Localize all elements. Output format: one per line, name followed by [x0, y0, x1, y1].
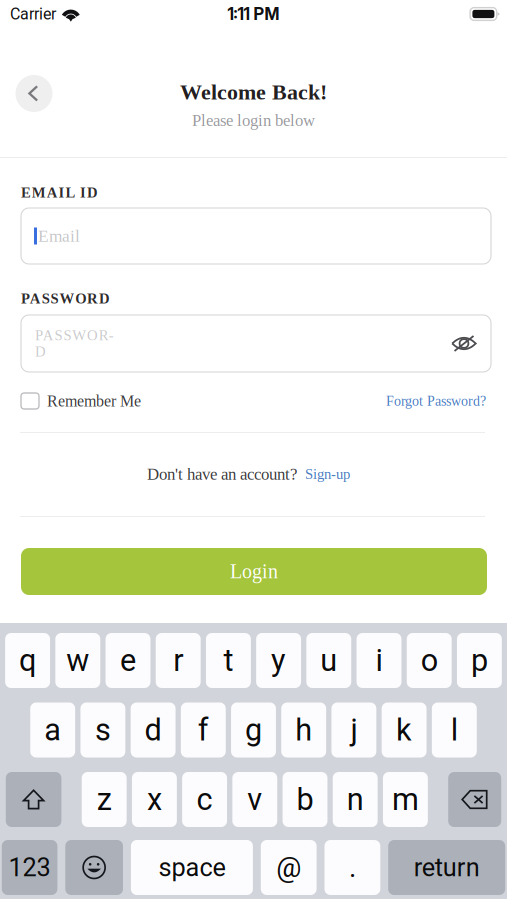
staticText: 123 [9, 853, 51, 882]
staticText: c [197, 781, 213, 817]
button[interactable]: Login [21, 548, 487, 595]
staticText: Forgot Password? [386, 393, 486, 409]
staticText: e [120, 642, 136, 678]
button[interactable]: l [432, 702, 477, 757]
staticText: i [375, 642, 382, 678]
staticText: k [396, 712, 412, 748]
button[interactable]: h [281, 702, 326, 757]
button[interactable]: Emoji [65, 840, 123, 895]
button[interactable]: z [82, 772, 127, 827]
button[interactable]: v [232, 772, 277, 827]
button[interactable]: p [457, 633, 502, 688]
button[interactable]: Back [15, 75, 52, 112]
staticText: f [198, 712, 209, 748]
staticText: g [245, 712, 262, 748]
button[interactable]: n [333, 772, 378, 827]
staticText: w [66, 642, 89, 678]
staticText: Welcome Back! [180, 80, 327, 104]
staticText: Please login below [192, 111, 315, 130]
staticText: l [451, 712, 458, 748]
button[interactable]: a [30, 702, 75, 757]
staticText: u [320, 642, 337, 678]
staticText: Carrier [10, 5, 56, 23]
staticText: z [97, 781, 112, 817]
button[interactable]: w [55, 633, 100, 688]
staticText: j [350, 712, 357, 748]
button[interactable]: j [331, 702, 376, 757]
staticText: b [296, 781, 313, 817]
staticText: EMAIL ID [21, 184, 98, 201]
staticText: h [295, 712, 312, 748]
button[interactable]: Shift [6, 772, 61, 827]
button[interactable]: y [256, 633, 301, 688]
staticText: Sign-up [305, 466, 350, 482]
staticText: Remember Me [47, 392, 141, 410]
button[interactable]: . [324, 840, 380, 895]
staticText: y [271, 642, 286, 678]
button[interactable]: 123 [2, 840, 57, 895]
button[interactable]: Delete [448, 772, 501, 827]
staticText: q [19, 642, 36, 678]
staticText: t [223, 642, 233, 678]
staticText: PASSWORD [21, 290, 110, 307]
button[interactable]: space [131, 840, 253, 895]
staticText: Email [38, 226, 80, 246]
button[interactable]: d [131, 702, 176, 757]
staticText: n [347, 781, 364, 817]
button[interactable]: return [388, 840, 505, 895]
staticText: @ [276, 851, 301, 884]
staticText: Login [230, 560, 278, 582]
staticText: o [421, 642, 438, 678]
button[interactable]: g [231, 702, 276, 757]
button[interactable]: Sign-up [305, 464, 350, 484]
staticText: return [414, 853, 480, 882]
button[interactable]: Show password [442, 321, 486, 365]
button[interactable]: m [383, 772, 428, 827]
button[interactable]: e [106, 633, 150, 688]
button[interactable]: x [132, 772, 177, 827]
button[interactable]: i [357, 633, 401, 688]
button[interactable]: q [5, 633, 50, 688]
staticText: . [349, 851, 356, 884]
staticText: PASSWORD [35, 327, 114, 360]
button[interactable]: b [283, 772, 327, 827]
button[interactable]: r [156, 633, 201, 688]
button[interactable]: k [382, 702, 427, 757]
staticText: s [95, 712, 111, 748]
button[interactable]: Remember Me [21, 390, 141, 412]
staticText: x [147, 781, 162, 817]
button[interactable]: c [182, 772, 227, 827]
staticText: Don't have an account? [147, 465, 297, 483]
button[interactable]: f [181, 702, 226, 757]
staticText: d [145, 712, 162, 748]
staticText: space [158, 853, 225, 882]
button[interactable]: @ [261, 840, 317, 895]
staticText: p [471, 642, 488, 678]
staticText: a [44, 712, 61, 748]
button[interactable]: s [80, 702, 125, 757]
staticText: r [173, 642, 183, 678]
staticText: m [392, 781, 419, 817]
staticText: 1:11 PM [227, 4, 279, 24]
button[interactable]: Forgot Password? [386, 390, 486, 412]
button[interactable]: u [306, 633, 351, 688]
button[interactable]: t [206, 633, 251, 688]
button[interactable]: o [407, 633, 452, 688]
staticText: v [247, 781, 262, 817]
